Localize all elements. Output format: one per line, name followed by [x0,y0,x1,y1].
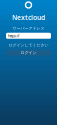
staticText: https:// [8,33,19,38]
staticText: サーバーアドレス [12,26,44,31]
staticText: ログイン [20,50,36,55]
staticText: ログインしてください [8,43,48,48]
staticText: Nextcloud [12,13,45,22]
button[interactable]: ログイン [6,50,51,56]
